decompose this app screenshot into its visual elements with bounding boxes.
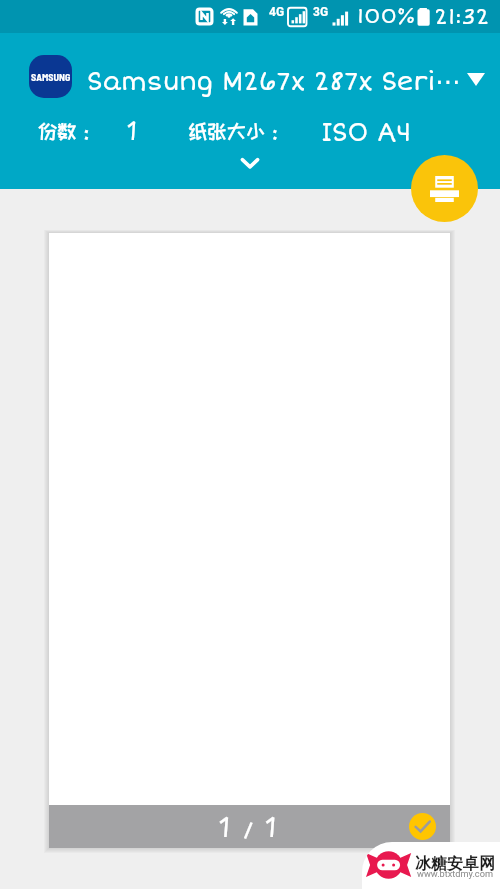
button[interactable]: 纸张大小： xyxy=(188,121,285,142)
staticText: ISO A4 xyxy=(321,118,412,149)
staticText: 100% xyxy=(357,3,416,29)
button[interactable]: 份数： xyxy=(38,121,96,142)
staticText: Samsung M267x 287x Seri⋯ xyxy=(87,67,461,98)
staticText: 1 / 1 xyxy=(220,813,280,840)
staticText: SAMSUNG xyxy=(31,71,71,83)
button[interactable]: Print xyxy=(411,155,478,222)
staticText: 21:32 xyxy=(434,3,490,30)
button[interactable]: Expand options xyxy=(238,151,262,175)
button[interactable]: Page selected xyxy=(409,813,436,840)
staticText: www.btxtdmy.com xyxy=(417,868,493,879)
staticText: 1 xyxy=(128,119,137,143)
staticText: 冰糖安卓网 xyxy=(415,854,495,874)
staticText: 3G xyxy=(313,5,329,19)
button[interactable]: SAMSUNG xyxy=(0,33,500,123)
staticText: 4G xyxy=(269,5,285,19)
